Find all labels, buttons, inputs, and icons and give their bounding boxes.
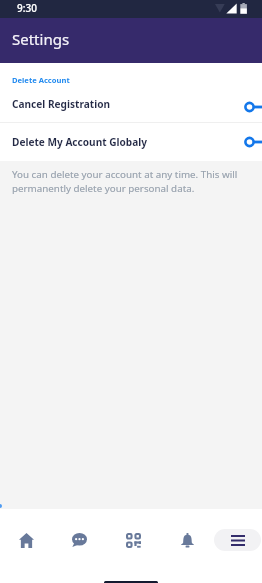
staticText: Settings bbox=[12, 29, 70, 49]
button[interactable]: Delete My Account Globaly bbox=[0, 123, 262, 161]
staticText: Cancel Registration bbox=[12, 97, 244, 111]
button[interactable]: Notifications bbox=[160, 509, 214, 571]
button[interactable]: Scan bbox=[106, 509, 160, 571]
button[interactable]: Cancel Registration bbox=[0, 85, 262, 122]
staticText: Delete Account bbox=[12, 75, 70, 85]
staticText: Delete My Account Globaly bbox=[12, 135, 244, 149]
button[interactable]: Home bbox=[0, 509, 53, 571]
staticText: You can delete your account at any time.… bbox=[12, 168, 248, 195]
staticText: 9:30 bbox=[17, 1, 37, 15]
button[interactable]: Messages bbox=[53, 509, 106, 571]
button[interactable]: Menu bbox=[214, 529, 261, 551]
